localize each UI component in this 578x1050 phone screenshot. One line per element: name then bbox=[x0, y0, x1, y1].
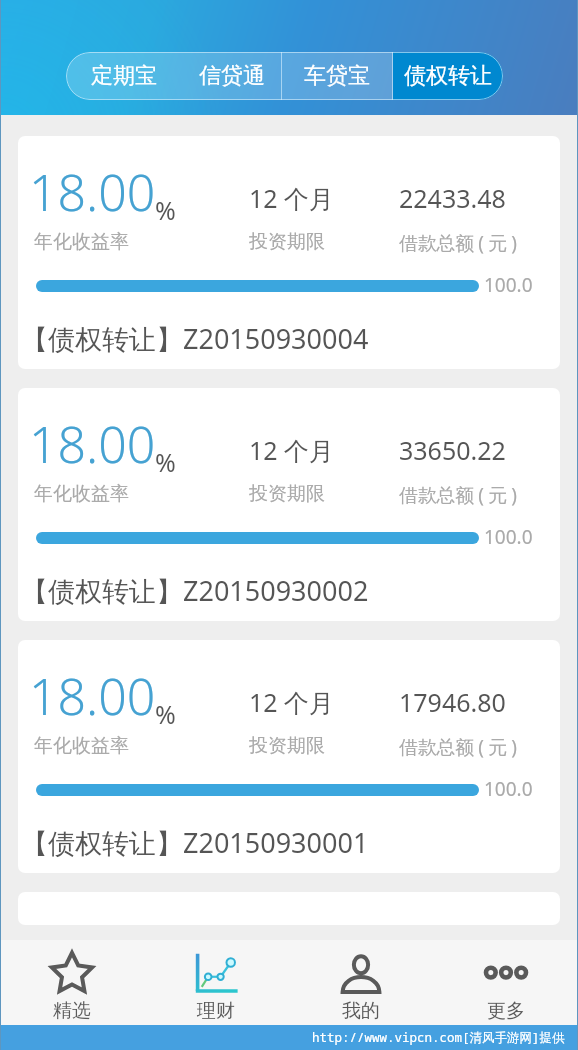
staticText: 借款总额 ( 元 ) bbox=[399, 230, 517, 256]
staticText: 年化收益率 bbox=[34, 230, 129, 254]
button[interactable]: 车贷宝 bbox=[282, 52, 392, 100]
staticText: 18.00 bbox=[29, 410, 156, 478]
staticText: % bbox=[155, 697, 176, 731]
staticText: 100.0 bbox=[484, 524, 533, 550]
staticText: 投资期限 bbox=[249, 734, 325, 758]
staticText: 借款总额 ( 元 ) bbox=[399, 734, 517, 760]
staticText: 100.0 bbox=[484, 272, 533, 298]
staticText: 定期宝 bbox=[91, 62, 157, 90]
staticText: % bbox=[155, 193, 176, 227]
staticText: 年化收益率 bbox=[34, 482, 129, 506]
button[interactable]: 18.00 bbox=[18, 136, 560, 369]
staticText: 100.0 bbox=[484, 776, 533, 802]
button[interactable]: 理财 bbox=[144, 940, 288, 1023]
staticText: 借款总额 ( 元 ) bbox=[399, 482, 517, 508]
staticText: 车贷宝 bbox=[304, 62, 370, 90]
button[interactable]: 债权转让 bbox=[393, 52, 503, 100]
staticText: 投资期限 bbox=[249, 230, 325, 254]
button[interactable]: 更多 bbox=[433, 940, 578, 1023]
staticText: 投资期限 bbox=[249, 482, 325, 506]
other: 理财 bbox=[193, 951, 239, 997]
staticText: 年化收益率 bbox=[34, 734, 129, 758]
button[interactable]: 信贷通 bbox=[182, 52, 281, 100]
staticText: http://www.vipcn.com[清风手游网]提供 bbox=[312, 1029, 565, 1046]
staticText: 【债权转让】Z20150930004 bbox=[21, 320, 369, 357]
staticText: 更多 bbox=[487, 999, 525, 1023]
other: 更多 bbox=[483, 951, 529, 997]
staticText: 12 个月 bbox=[249, 685, 335, 719]
button[interactable]: 定期宝 bbox=[66, 52, 182, 100]
staticText: 精选 bbox=[53, 999, 91, 1023]
other: 我的 bbox=[338, 951, 384, 997]
staticText: 理财 bbox=[197, 999, 235, 1023]
staticText: 33650.22 bbox=[399, 433, 506, 467]
staticText: 我的 bbox=[342, 999, 380, 1023]
button[interactable]: 精选 bbox=[0, 940, 144, 1023]
staticText: 18.00 bbox=[29, 662, 156, 730]
button[interactable]: 18.00 bbox=[18, 388, 560, 621]
staticText: 信贷通 bbox=[199, 62, 265, 90]
staticText: 【债权转让】Z20150930002 bbox=[21, 572, 369, 609]
staticText: 17946.80 bbox=[399, 685, 506, 719]
staticText: 18.00 bbox=[29, 158, 156, 226]
staticText: 12 个月 bbox=[249, 181, 335, 215]
button[interactable]: 我的 bbox=[288, 940, 433, 1023]
button[interactable]: 18.00 bbox=[18, 640, 560, 873]
staticText: 债权转让 bbox=[404, 62, 492, 90]
staticText: 22433.48 bbox=[399, 181, 506, 215]
staticText: 【债权转让】Z20150930001 bbox=[21, 824, 369, 861]
other: 精选 bbox=[49, 951, 95, 997]
staticText: 12 个月 bbox=[249, 433, 335, 467]
staticText: % bbox=[155, 445, 176, 479]
